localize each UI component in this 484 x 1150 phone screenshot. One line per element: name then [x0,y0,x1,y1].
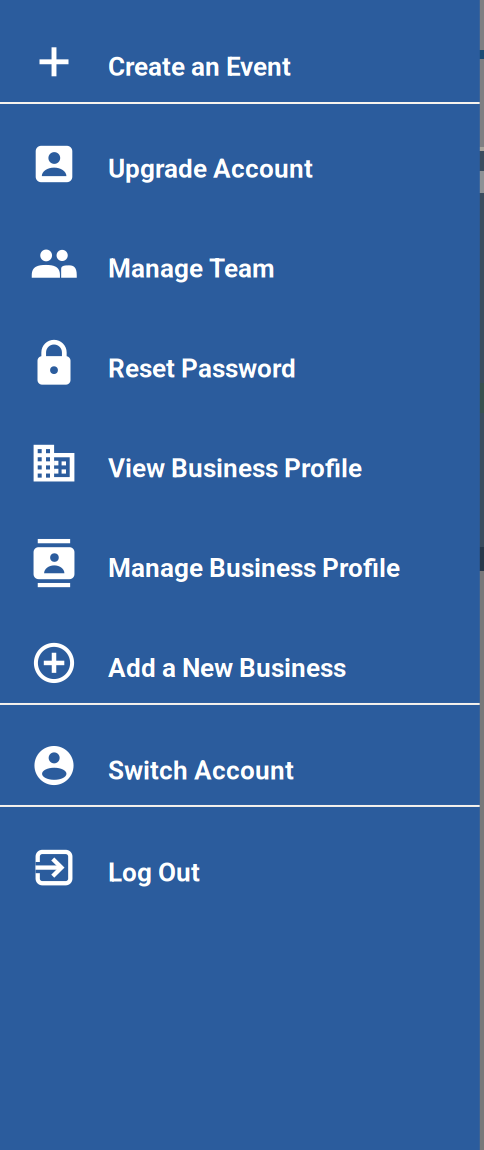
staticText: Log Out [108,857,200,888]
staticText: View Business Profile [108,453,362,484]
staticText: Upgrade Account [108,153,313,184]
staticText: Reset Password [108,353,296,384]
button[interactable]: Switch Account [0,705,480,805]
button[interactable]: Manage Team [0,204,480,304]
staticText: Add a New Business [108,653,346,683]
button[interactable]: Reset Password [0,304,480,403]
button[interactable]: Upgrade Account [0,104,480,204]
staticText: Create an Event [108,51,291,82]
button[interactable]: Create an Event [0,0,480,102]
staticText: Manage Team [108,253,275,284]
button[interactable]: Log Out [0,807,480,907]
button[interactable]: View Business Profile [0,403,480,503]
button[interactable]: Manage Business Profile [0,503,480,603]
button[interactable]: Add a New Business [0,603,480,703]
staticText: Switch Account [108,755,294,786]
staticText: Manage Business Profile [108,553,400,583]
